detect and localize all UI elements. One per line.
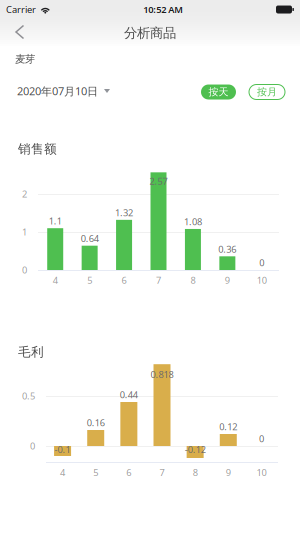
staticText: 8: [190, 274, 195, 286]
staticText: 9: [225, 274, 230, 286]
staticText: 按天: [208, 86, 228, 98]
staticText: 毛利: [18, 344, 44, 360]
staticText: 0: [259, 256, 264, 269]
staticText: 4: [53, 274, 58, 286]
staticText: 7: [159, 466, 164, 479]
staticText: Carrier: [6, 3, 36, 16]
staticText: 1.08: [184, 215, 202, 228]
staticText: 0: [22, 264, 27, 276]
button[interactable]: 按天: [201, 84, 236, 99]
staticText: 0.818: [150, 368, 173, 381]
staticText: 2.57: [149, 175, 167, 187]
staticText: 0.12: [219, 420, 237, 433]
staticText: 1: [22, 226, 27, 238]
staticText: 0: [30, 440, 35, 452]
staticText: 5: [93, 466, 98, 479]
staticText: 0: [259, 432, 264, 445]
button[interactable]: Back: [0, 18, 40, 46]
staticText: 销售额: [18, 141, 57, 157]
staticText: 0.16: [87, 416, 105, 429]
staticText: 1.32: [115, 206, 133, 219]
staticText: 4: [60, 466, 65, 479]
button[interactable]: 按月: [249, 84, 285, 99]
staticText: 0.5: [22, 390, 35, 402]
staticText: -0.1: [55, 443, 71, 456]
staticText: 5: [87, 274, 92, 286]
staticText: 0.44: [120, 388, 138, 401]
staticText: 7: [156, 274, 161, 286]
staticText: 10: [256, 466, 266, 479]
staticText: 8: [193, 466, 198, 479]
staticText: 1.1: [49, 214, 62, 227]
staticText: 2020年07月10日: [17, 83, 98, 99]
staticText: 10:52 AM: [143, 3, 183, 16]
staticText: 6: [126, 466, 131, 479]
staticText: 按月: [257, 86, 277, 98]
staticText: 2: [22, 188, 27, 200]
staticText: 分析商品: [124, 25, 176, 41]
staticText: 麦芽: [15, 52, 35, 66]
staticText: 9: [226, 466, 231, 479]
staticText: 0.64: [81, 232, 99, 245]
button[interactable]: 2020年07月10日: [17, 80, 110, 102]
staticText: 0.36: [218, 243, 236, 255]
staticText: -0.12: [185, 443, 206, 456]
staticText: 10: [257, 274, 267, 286]
staticText: 6: [122, 274, 127, 286]
